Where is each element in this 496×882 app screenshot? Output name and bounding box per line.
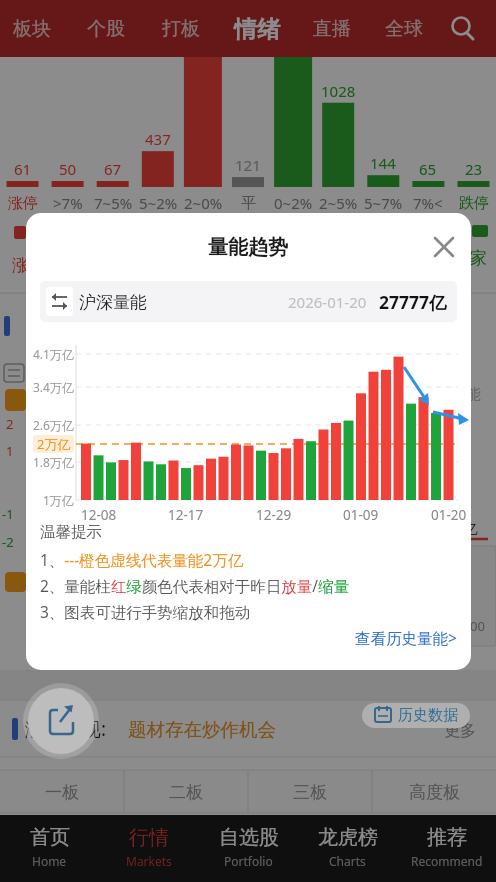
staticText: Portfolio: [224, 853, 273, 869]
staticText: 亿: [464, 521, 478, 539]
staticText: 1.8万亿: [33, 454, 74, 470]
staticText: 2~0%: [184, 193, 223, 213]
staticText: 跌停: [459, 194, 489, 213]
button[interactable]: 板块: [0, 10, 64, 48]
staticText: 12-17: [168, 506, 204, 524]
staticText: -2: [2, 533, 14, 551]
button[interactable]: [99, 815, 198, 882]
button[interactable]: 一板: [7, 775, 117, 809]
staticText: 0~2%: [274, 193, 313, 213]
staticText: 50: [59, 159, 77, 179]
staticText: 题材存在炒作机会: [128, 718, 276, 741]
staticText: 自选股: [219, 825, 279, 850]
staticText: 全球: [385, 17, 423, 41]
staticText: 量能趋势: [208, 235, 288, 260]
button[interactable]: 三板: [255, 775, 365, 809]
staticText: 首页: [30, 825, 70, 850]
staticText: 12-29: [256, 506, 292, 524]
button[interactable]: [298, 815, 397, 882]
staticText: >7%: [53, 193, 83, 213]
staticText: 涨停表现:: [25, 716, 107, 742]
staticText: 更多: [444, 721, 476, 741]
button[interactable]: [198, 815, 297, 882]
staticText: 12-08: [81, 506, 117, 524]
staticText: 01-09: [343, 506, 379, 524]
staticText: 推荐: [427, 825, 467, 850]
staticText: 打板: [162, 17, 200, 41]
staticText: 直播: [313, 17, 351, 41]
staticText: 7~5%: [94, 193, 133, 213]
staticText: 个股: [87, 17, 125, 41]
staticText: 能: [466, 385, 481, 404]
button[interactable]: 高度板: [379, 775, 489, 809]
button[interactable]: 个股: [74, 10, 138, 48]
staticText: -1: [2, 505, 14, 523]
button[interactable]: 打板: [149, 10, 213, 48]
staticText: 144: [370, 153, 396, 173]
staticText: 437: [145, 129, 171, 149]
staticText: 3、图表可进行手势缩放和拖动: [40, 601, 251, 622]
button[interactable]: [0, 815, 99, 882]
staticText: 1万亿: [43, 492, 74, 508]
staticText: 121: [235, 155, 261, 175]
staticText: 涨: [12, 255, 29, 276]
staticText: 查看历史量能>: [355, 627, 457, 648]
staticText: 行情: [129, 825, 169, 850]
staticText: 27777亿: [379, 290, 447, 314]
staticText: 7%<: [413, 193, 443, 213]
staticText: 01-20: [431, 506, 467, 524]
staticText: 板块: [13, 17, 51, 41]
staticText: 2、量能柱红绿颜色代表相对于昨日放量/缩量: [40, 575, 350, 596]
staticText: 2~5%: [319, 193, 358, 213]
staticText: Recommend: [411, 853, 483, 869]
staticText: 5~7%: [364, 193, 403, 213]
button[interactable]: [397, 815, 496, 882]
staticText: 5~2%: [139, 193, 178, 213]
staticText: Charts: [329, 853, 366, 869]
staticText: 龙虎榜: [318, 825, 378, 850]
button[interactable]: 全球: [372, 10, 436, 48]
button[interactable]: [428, 231, 460, 263]
staticText: 1: [6, 442, 14, 460]
staticText: 2: [6, 415, 14, 433]
button[interactable]: [40, 281, 457, 322]
button[interactable]: 情绪: [225, 6, 289, 52]
staticText: 温馨提示: [40, 522, 102, 542]
button[interactable]: 直播: [300, 10, 364, 48]
button[interactable]: [446, 12, 480, 46]
staticText: 家: [470, 248, 487, 269]
staticText: 二板: [169, 782, 203, 803]
button[interactable]: [362, 703, 470, 728]
staticText: 2026-01-20: [288, 292, 367, 312]
staticText: 67: [104, 159, 122, 179]
staticText: Home: [32, 853, 67, 869]
staticText: 2.6万亿: [33, 417, 74, 433]
staticText: 3.4万亿: [33, 379, 74, 395]
staticText: 历史数据: [398, 706, 458, 725]
staticText: 1、---橙色虚线代表量能2万亿: [40, 549, 244, 570]
staticText: 23: [465, 159, 483, 179]
staticText: Markets: [126, 853, 172, 869]
staticText: 00: [470, 617, 485, 635]
staticText: 2万亿: [37, 435, 71, 453]
staticText: 情绪: [234, 15, 280, 44]
staticText: 涨停: [8, 194, 38, 213]
staticText: 4.1万亿: [33, 346, 74, 362]
button[interactable]: 查看历史量能>: [257, 625, 457, 649]
staticText: 高度板: [409, 782, 460, 803]
button[interactable]: 二板: [131, 775, 241, 809]
staticText: 61: [14, 159, 32, 179]
staticText: 沪深量能: [79, 292, 147, 313]
staticText: 一板: [45, 782, 79, 803]
button[interactable]: [28, 688, 94, 754]
staticText: 平: [241, 194, 256, 213]
staticText: 1028: [321, 81, 356, 101]
staticText: 三板: [293, 782, 327, 803]
staticText: 65: [419, 159, 437, 179]
